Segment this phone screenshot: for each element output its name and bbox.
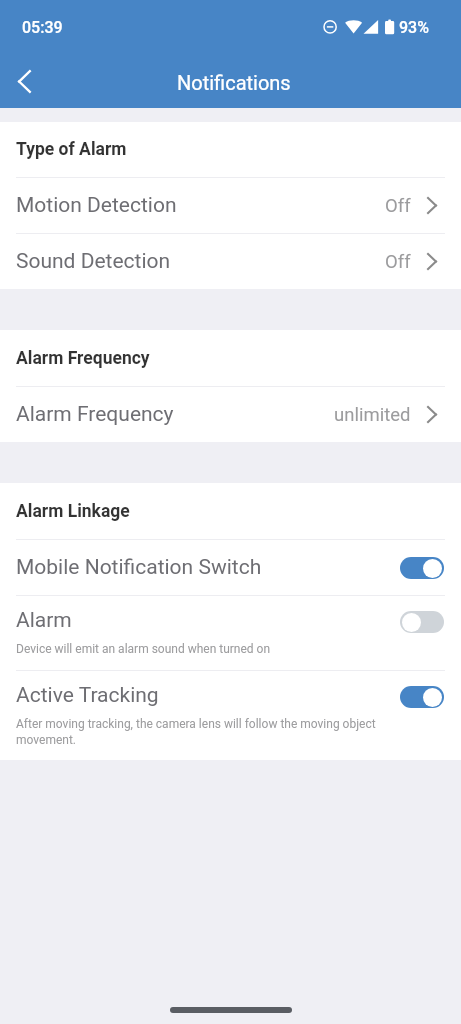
staticText: Alarm Linkage [16,501,130,522]
button[interactable]: Alarm [0,596,461,670]
button[interactable]: Switch on [400,557,444,579]
button[interactable]: Motion Detection [0,178,461,233]
staticText: Mobile Notification Switch [16,555,262,580]
staticText: Alarm Frequency [16,402,174,427]
staticText: Alarm [16,608,72,633]
staticText: Sound Detection [16,249,171,274]
staticText: Type of Alarm [16,139,127,160]
staticText: Off [385,251,411,273]
staticText: After moving tracking, the camera lens w… [16,717,381,747]
staticText: 05:39 [22,18,63,37]
staticText: Alarm Frequency [16,348,150,369]
staticText: Motion Detection [16,193,177,218]
staticText: Notifications [177,71,291,94]
button[interactable]: Switch off [400,611,444,633]
button[interactable]: Alarm Frequency [0,387,461,442]
button[interactable]: Active Tracking [0,671,461,760]
staticText: Off [385,195,411,217]
staticText: unlimited [334,404,411,426]
button[interactable]: Switch on [400,686,444,708]
staticText: Device will emit an alarm sound when tur… [16,642,271,656]
button[interactable]: Back [0,55,48,103]
button[interactable]: Mobile Notification Switch [0,540,461,595]
staticText: 93% [399,18,429,37]
button[interactable]: Sound Detection [0,234,461,289]
staticText: Active Tracking [16,683,159,708]
